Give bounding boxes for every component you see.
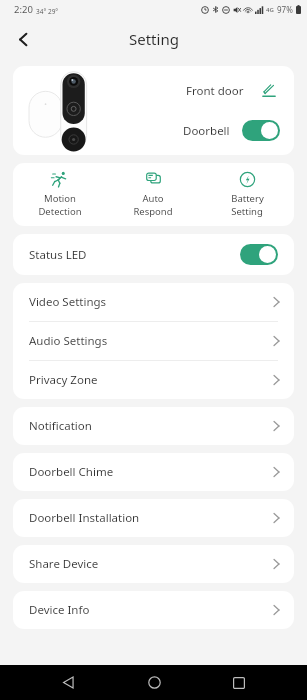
staticText: Share Device	[29, 556, 99, 572]
button[interactable]: Toggle	[242, 120, 280, 141]
button[interactable]: Battery	[200, 163, 294, 226]
button[interactable]: Back	[50, 665, 86, 700]
button[interactable]: Share Device	[13, 545, 294, 583]
staticText: Setting	[231, 205, 263, 218]
staticText: Battery	[231, 192, 264, 205]
button[interactable]: Notification	[13, 407, 294, 445]
staticText: Privacy Zone	[29, 372, 98, 388]
button[interactable]: Device Info	[13, 591, 294, 629]
staticText: Front door	[186, 83, 244, 99]
button[interactable]: Rename device	[258, 80, 280, 102]
staticText: Respond	[133, 205, 173, 218]
staticText: Setting	[129, 29, 179, 49]
button[interactable]: Auto	[106, 163, 200, 226]
staticText: Status LED	[29, 247, 87, 263]
staticText: Doorbell	[183, 123, 230, 139]
button[interactable]: Doorbell Installation	[13, 499, 294, 537]
button[interactable]: Back	[6, 22, 40, 56]
staticText: Device Info	[29, 602, 90, 618]
staticText: Auto	[142, 192, 164, 205]
button[interactable]: Privacy Zone	[13, 361, 294, 399]
button[interactable]: Home	[136, 665, 172, 700]
button[interactable]: Audio Settings	[13, 322, 294, 360]
staticText: Motion	[44, 192, 76, 205]
staticText: Doorbell Installation	[29, 510, 140, 526]
staticText: Video Settings	[29, 294, 107, 310]
staticText: Audio Settings	[29, 333, 108, 349]
button[interactable]: Doorbell Chime	[13, 453, 294, 491]
button[interactable]: Video Settings	[13, 283, 294, 321]
staticText: Detection	[38, 205, 82, 218]
button[interactable]: Motion	[13, 163, 106, 226]
button[interactable]: Status LED	[13, 234, 294, 275]
staticText: 34° 29°	[36, 7, 59, 16]
button[interactable]: Recent apps	[221, 665, 257, 700]
staticText: Notification	[29, 418, 92, 434]
staticText: Doorbell Chime	[29, 464, 114, 480]
staticText: 97%	[277, 4, 293, 15]
staticText: 2:20	[14, 3, 33, 16]
staticText: 4G	[266, 6, 274, 14]
button[interactable]: Toggle	[240, 244, 278, 265]
